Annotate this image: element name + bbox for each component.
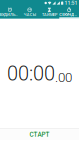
staticText: .00 xyxy=(55,70,72,85)
button[interactable]: ТАЙМЕР xyxy=(39,6,59,19)
staticText: 11:51 xyxy=(64,0,77,6)
staticText: БУДИЛЬНИК xyxy=(0,12,20,17)
staticText: ТАЙМЕР xyxy=(42,12,57,17)
button[interactable]: СЕКУНДОМЕР xyxy=(59,6,79,19)
staticText: 00:00 xyxy=(7,62,55,85)
button[interactable]: ЧАСЫ xyxy=(20,6,40,19)
button[interactable]: БУДИЛЬНИК xyxy=(0,6,20,19)
button[interactable]: СТАРТ xyxy=(0,129,79,140)
staticText: СТАРТ xyxy=(29,131,49,138)
staticText: ЧАСЫ xyxy=(24,12,36,17)
staticText: СЕКУНДОМЕР xyxy=(59,12,79,17)
